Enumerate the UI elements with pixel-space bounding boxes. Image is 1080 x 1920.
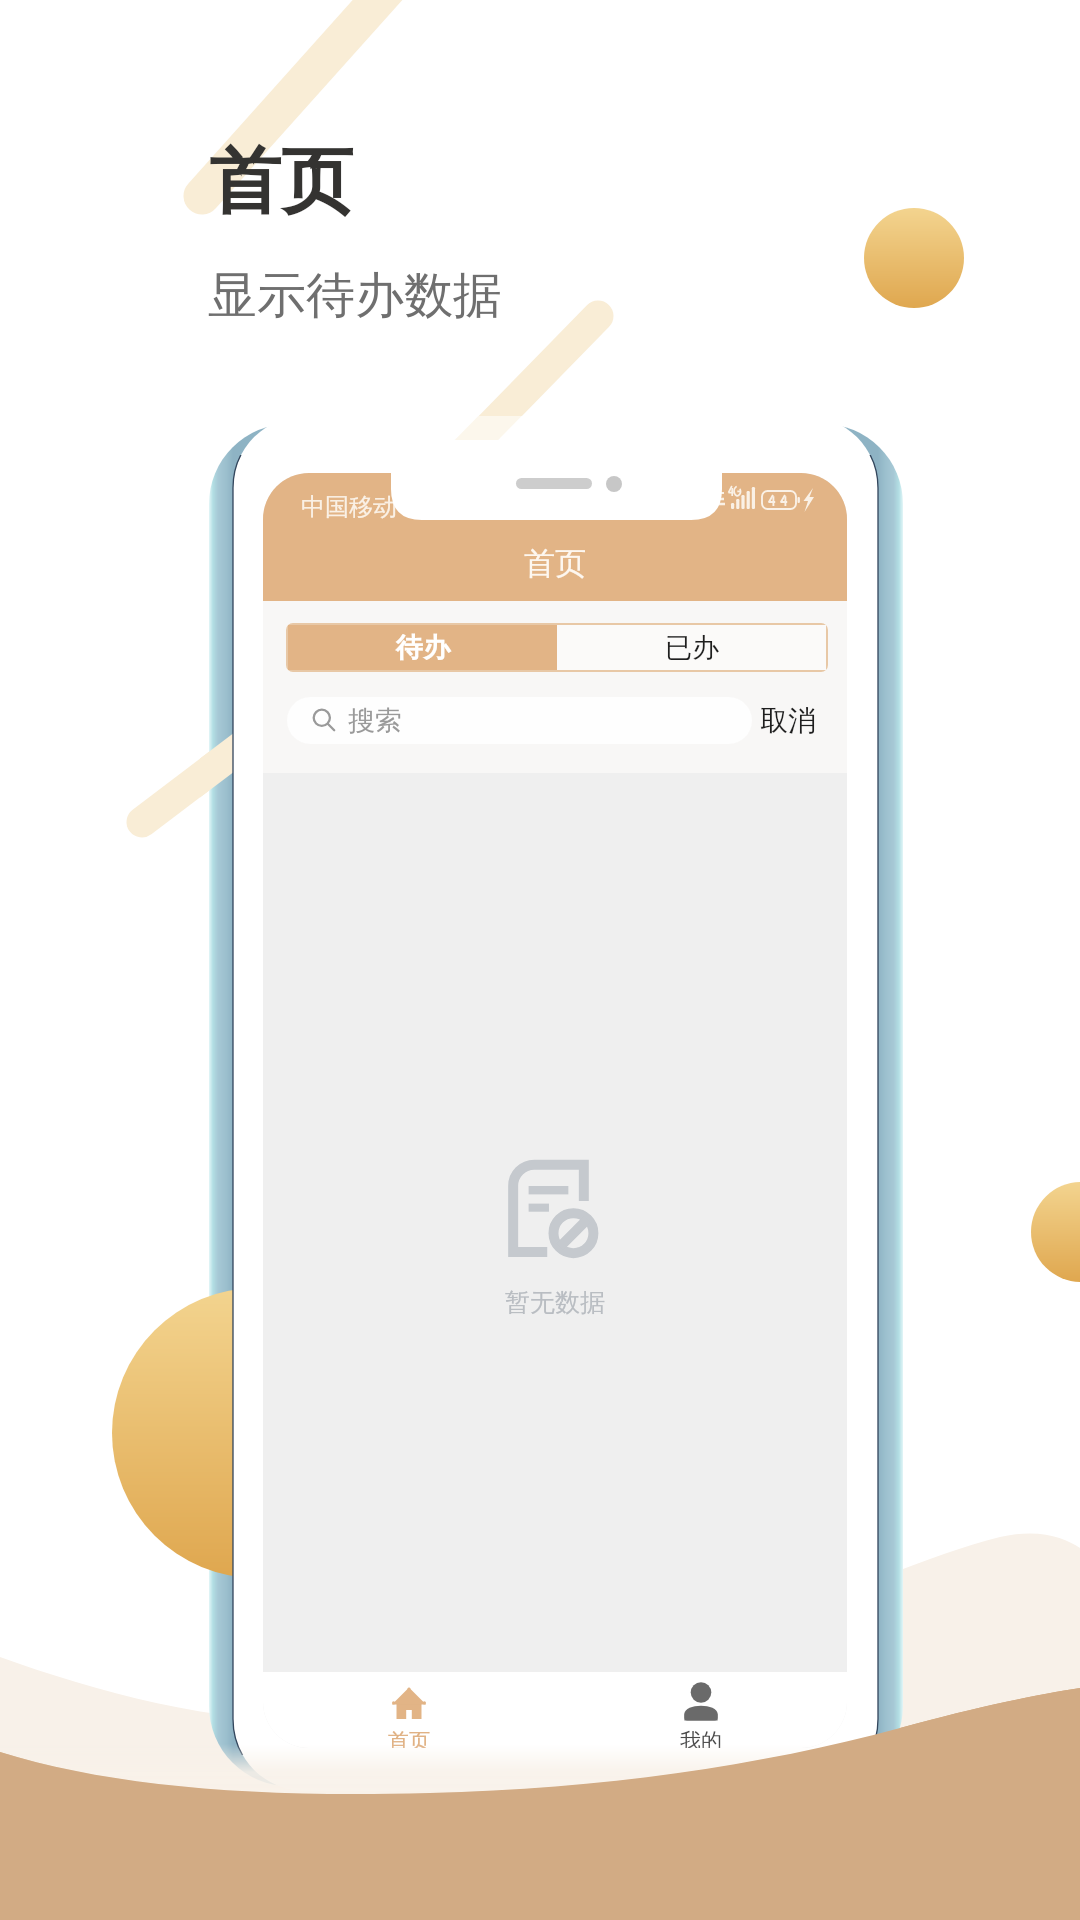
staticText: 取消: [760, 703, 816, 738]
staticText: 首页: [209, 137, 353, 228]
other: 我的: [683, 1682, 719, 1722]
staticText: 暂无数据: [505, 1287, 605, 1318]
staticText: 待办: [396, 631, 450, 665]
staticText: 首页: [524, 544, 586, 583]
button[interactable]: 我的: [555, 1672, 847, 1748]
button[interactable]: 取消: [760, 697, 816, 744]
button[interactable]: 搜索: [287, 697, 752, 744]
staticText: 中国移动 1: [301, 489, 417, 522]
staticText: 首页: [388, 1728, 430, 1748]
staticText: 已办: [665, 631, 719, 665]
button[interactable]: 首页: [263, 1672, 555, 1748]
other: 首页: [391, 1686, 427, 1719]
staticText: 搜索: [348, 704, 402, 738]
staticText: 我的: [680, 1728, 722, 1748]
button[interactable]: 待办: [288, 625, 557, 670]
button[interactable]: 已办: [557, 625, 826, 670]
staticText: 显示待办数据: [208, 265, 502, 327]
